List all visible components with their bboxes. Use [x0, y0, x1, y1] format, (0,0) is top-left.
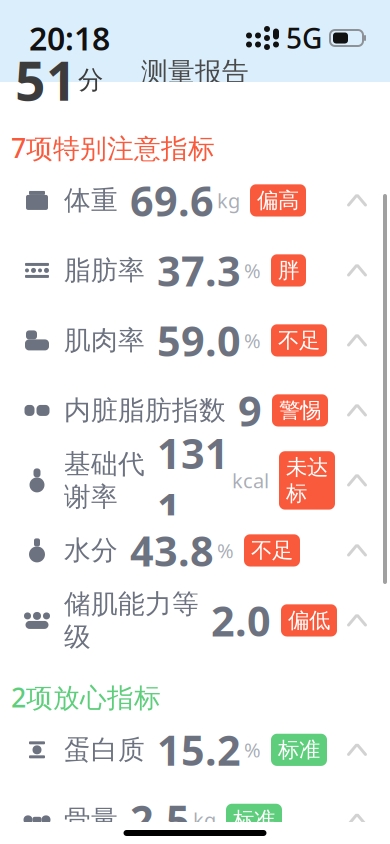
staticText: 肌肉率 [64, 324, 145, 357]
staticText: 标准 [233, 807, 275, 833]
staticText: 胖 [278, 257, 299, 283]
staticText: 43.8 [130, 523, 214, 578]
staticText: 20:18 [29, 17, 110, 59]
staticText: 蛋白质 [64, 733, 145, 766]
staticText: 69.6 [130, 173, 214, 228]
staticText: 测量报告 [141, 56, 249, 88]
staticText: 59.0 [157, 313, 241, 368]
button[interactable]: 基础代谢率 [0, 445, 390, 515]
button[interactable]: 储肌能力等级 [0, 585, 390, 655]
staticText: 偏高 [257, 187, 299, 213]
staticText: 不足 [278, 327, 320, 353]
staticText: % [244, 327, 261, 354]
staticText: 内脏脂肪指数 [64, 394, 226, 427]
staticText: kcal [232, 467, 269, 494]
staticText: 标准 [278, 737, 320, 763]
staticText: kg [217, 187, 240, 214]
staticText: 水分 [64, 534, 118, 567]
staticText: kg [193, 806, 216, 833]
button[interactable]: 骨量 [0, 785, 390, 844]
staticText: 基础代谢率 [64, 448, 145, 513]
staticText: % [244, 257, 261, 284]
staticText: 7项特别注意指标 [11, 130, 215, 165]
staticText: 2.0 [211, 593, 271, 648]
staticText: 脂肪率 [64, 254, 145, 287]
staticText: 9 [238, 383, 262, 438]
staticText: 37.3 [157, 243, 241, 298]
button[interactable]: 脂肪率 [0, 235, 390, 305]
button[interactable]: 蛋白质 [0, 715, 390, 785]
button[interactable]: 水分 [0, 515, 390, 585]
staticText: % [217, 537, 234, 564]
staticText: 5G [286, 19, 322, 57]
staticText: 1311 [157, 425, 229, 535]
staticText: 骨量 [64, 803, 118, 836]
button[interactable]: 肌肉率 [0, 305, 390, 375]
staticText: 体重 [64, 184, 118, 217]
staticText: 警惕 [279, 397, 321, 423]
staticText: 不足 [251, 537, 293, 563]
button[interactable]: 测量报告 [0, 64, 390, 80]
staticText: 2项放心指标 [11, 679, 161, 715]
staticText: % [244, 736, 261, 763]
staticText: 储肌能力等级 [64, 588, 199, 653]
staticText: 2.5 [130, 792, 190, 844]
staticText: 未达标 [286, 454, 328, 507]
staticText: 15.2 [157, 722, 241, 777]
button[interactable]: 体重 [0, 165, 390, 235]
staticText: 偏低 [288, 607, 330, 633]
staticText: 分 [78, 64, 103, 95]
button[interactable]: 内脏脂肪指数 [0, 375, 390, 445]
staticText: 51 [15, 45, 77, 115]
